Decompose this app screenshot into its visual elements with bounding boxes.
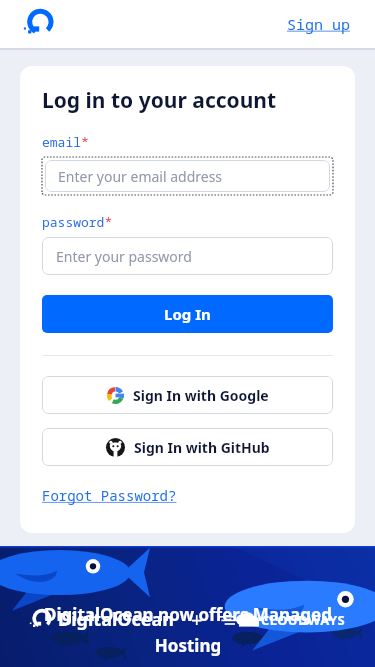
staticText: Log In — [164, 304, 211, 324]
staticText: email* — [42, 133, 89, 151]
staticText: Log in to your account — [42, 86, 277, 115]
staticText: Forgot Password? — [42, 486, 177, 505]
button[interactable]: Enter your email address — [42, 157, 333, 195]
button[interactable]: Log In — [42, 295, 333, 333]
staticText: DigitalOcean now offers Managed Hosting — [44, 603, 332, 657]
button[interactable]: DigitalOcean home — [24, 9, 54, 39]
staticText: Enter your password — [56, 247, 192, 266]
staticText: + — [191, 606, 203, 633]
staticText: Sign In with GitHub — [134, 438, 270, 457]
staticText: CLOUDWAYS — [261, 611, 346, 629]
staticText: Sign up — [287, 14, 351, 34]
staticText: password* — [42, 213, 113, 231]
staticText: DigitalOcean — [58, 607, 175, 632]
button[interactable]: Sign In with Google — [42, 376, 333, 414]
button[interactable]: Sign up — [283, 10, 355, 38]
button[interactable]: DigitalOcean and Cloudways promotion — [0, 546, 375, 667]
button[interactable]: Forgot Password? — [42, 486, 177, 505]
button[interactable]: Enter your password — [42, 237, 333, 275]
button[interactable]: Sign In with GitHub — [42, 428, 333, 466]
staticText: Sign In with Google — [133, 386, 269, 405]
staticText: Enter your email address — [58, 167, 223, 186]
